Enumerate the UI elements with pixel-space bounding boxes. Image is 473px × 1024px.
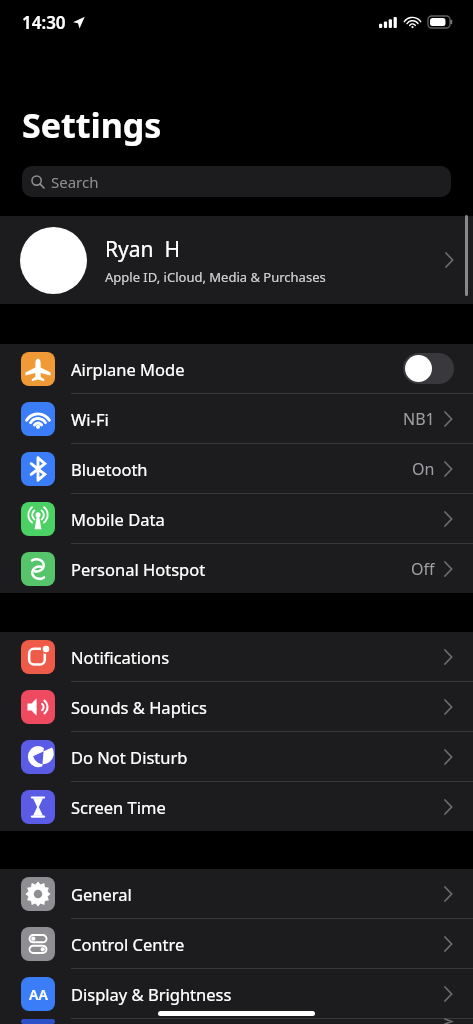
button[interactable]: Search (22, 166, 451, 197)
button[interactable]: Wi-Fi (0, 394, 473, 444)
button[interactable]: Home Screen (0, 1019, 473, 1024)
staticText: Do Not Disturb (71, 746, 188, 768)
staticText: Screen Time (71, 796, 166, 818)
staticText: Display & Brightness (71, 983, 232, 1005)
button[interactable]: Bluetooth (0, 444, 473, 494)
staticText: Off (411, 558, 435, 580)
staticText: Settings (22, 102, 162, 148)
button[interactable]: Screen Time (0, 782, 473, 831)
staticText: Apple ID, iCloud, Media & Purchases (105, 268, 326, 286)
button[interactable]: Mobile Data (0, 494, 473, 544)
button[interactable]: Ryan H (0, 216, 473, 304)
button[interactable]: Control Centre (0, 919, 473, 969)
staticText: Notifications (71, 646, 170, 668)
staticText: Airplane Mode (71, 358, 185, 380)
staticText: Ryan H (105, 235, 181, 264)
button[interactable]: General (0, 869, 473, 919)
staticText: Bluetooth (71, 458, 148, 480)
staticText: General (71, 883, 132, 905)
staticText: Wi-Fi (71, 408, 109, 430)
staticText: Search (51, 172, 99, 192)
staticText: Control Centre (71, 933, 185, 955)
staticText: Sounds & Haptics (71, 696, 207, 718)
staticText: 14:30 (22, 11, 66, 34)
staticText: Mobile Data (71, 508, 165, 530)
staticText: AA (29, 985, 48, 1004)
button[interactable]: Airplane Mode toggle (403, 353, 454, 384)
button[interactable]: Notifications (0, 632, 473, 682)
button[interactable]: Airplane Mode (0, 344, 473, 394)
staticText: NB1 (403, 408, 435, 430)
button[interactable]: Do Not Disturb (0, 732, 473, 782)
button[interactable]: Sounds & Haptics (0, 682, 473, 732)
staticText: Personal Hotspot (71, 558, 206, 580)
button[interactable]: AA (0, 969, 473, 1019)
staticText: On (412, 458, 435, 480)
button[interactable]: Personal Hotspot (0, 544, 473, 593)
